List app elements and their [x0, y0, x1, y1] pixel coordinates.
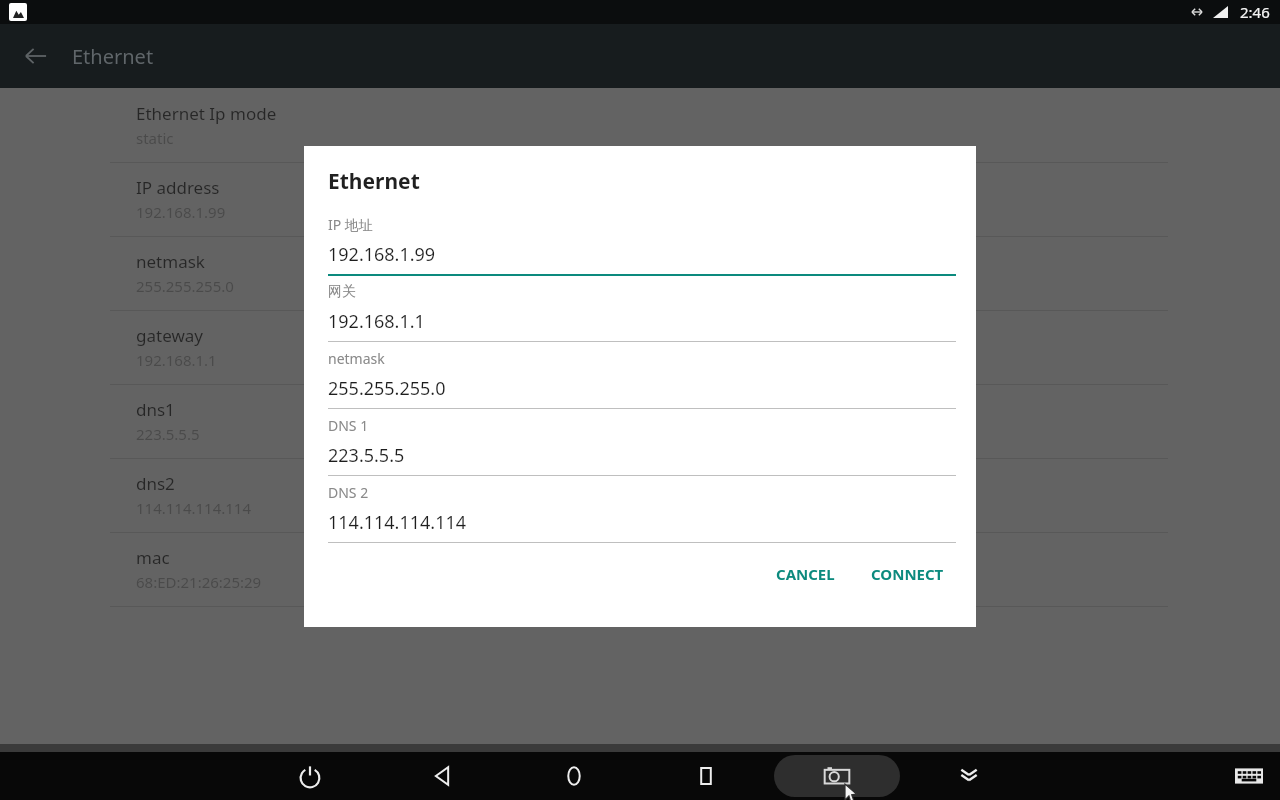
staticText: mac [136, 546, 170, 569]
staticText: 192.168.1.99 [136, 202, 226, 222]
staticText: netmask [328, 349, 385, 368]
staticText: 255.255.255.0 [136, 276, 234, 296]
button[interactable]: Navigation button [682, 752, 730, 800]
button[interactable]: netmask [0, 236, 1280, 310]
staticText: 114.114.114.114 [328, 510, 467, 535]
button[interactable]: Navigation button [418, 752, 466, 800]
staticText: dns1 [136, 398, 175, 421]
staticText: DNS 1 [328, 416, 369, 435]
staticText: IP address [136, 176, 220, 199]
staticText: static [136, 128, 174, 148]
button[interactable]: Screenshot [774, 755, 900, 797]
staticText: CONNECT [871, 564, 944, 584]
button[interactable]: dns1 [0, 384, 1280, 458]
staticText: 192.168.1.99 [328, 242, 436, 267]
staticText: 192.168.1.1 [136, 350, 217, 370]
staticText: Ethernet [328, 167, 420, 196]
button[interactable]: Keyboard [1235, 766, 1263, 786]
button[interactable]: mac [0, 532, 1280, 606]
button[interactable]: Ethernet Ip mode [0, 88, 1280, 162]
staticText: 223.5.5.5 [136, 424, 200, 444]
staticText: 2:46 [1240, 2, 1270, 22]
staticText: 114.114.114.114 [136, 498, 252, 518]
button[interactable]: Navigation button [550, 752, 598, 800]
staticText: CANCEL [776, 564, 835, 584]
button[interactable]: Navigation button [286, 752, 334, 800]
staticText: 192.168.1.1 [328, 309, 425, 334]
staticText: Ethernet Ip mode [136, 102, 277, 125]
staticText: dns2 [136, 472, 175, 495]
staticText: 223.5.5.5 [328, 443, 405, 468]
staticText: DNS 2 [328, 483, 369, 502]
button[interactable]: CANCEL [764, 554, 847, 594]
button[interactable]: Navigation button [945, 752, 993, 800]
button[interactable]: IP address [0, 162, 1280, 236]
staticText: 网关 [328, 283, 356, 301]
staticText: gateway [136, 324, 203, 347]
staticText: Ethernet [72, 43, 154, 70]
staticText: IP 地址 [328, 215, 373, 234]
button[interactable]: Back [0, 24, 72, 88]
button[interactable]: CONNECT [859, 554, 956, 594]
button[interactable]: dns2 [0, 458, 1280, 532]
staticText: netmask [136, 250, 205, 273]
staticText: 255.255.255.0 [328, 376, 446, 401]
staticText: 68:ED:21:26:25:29 [136, 572, 262, 592]
button[interactable]: gateway [0, 310, 1280, 384]
